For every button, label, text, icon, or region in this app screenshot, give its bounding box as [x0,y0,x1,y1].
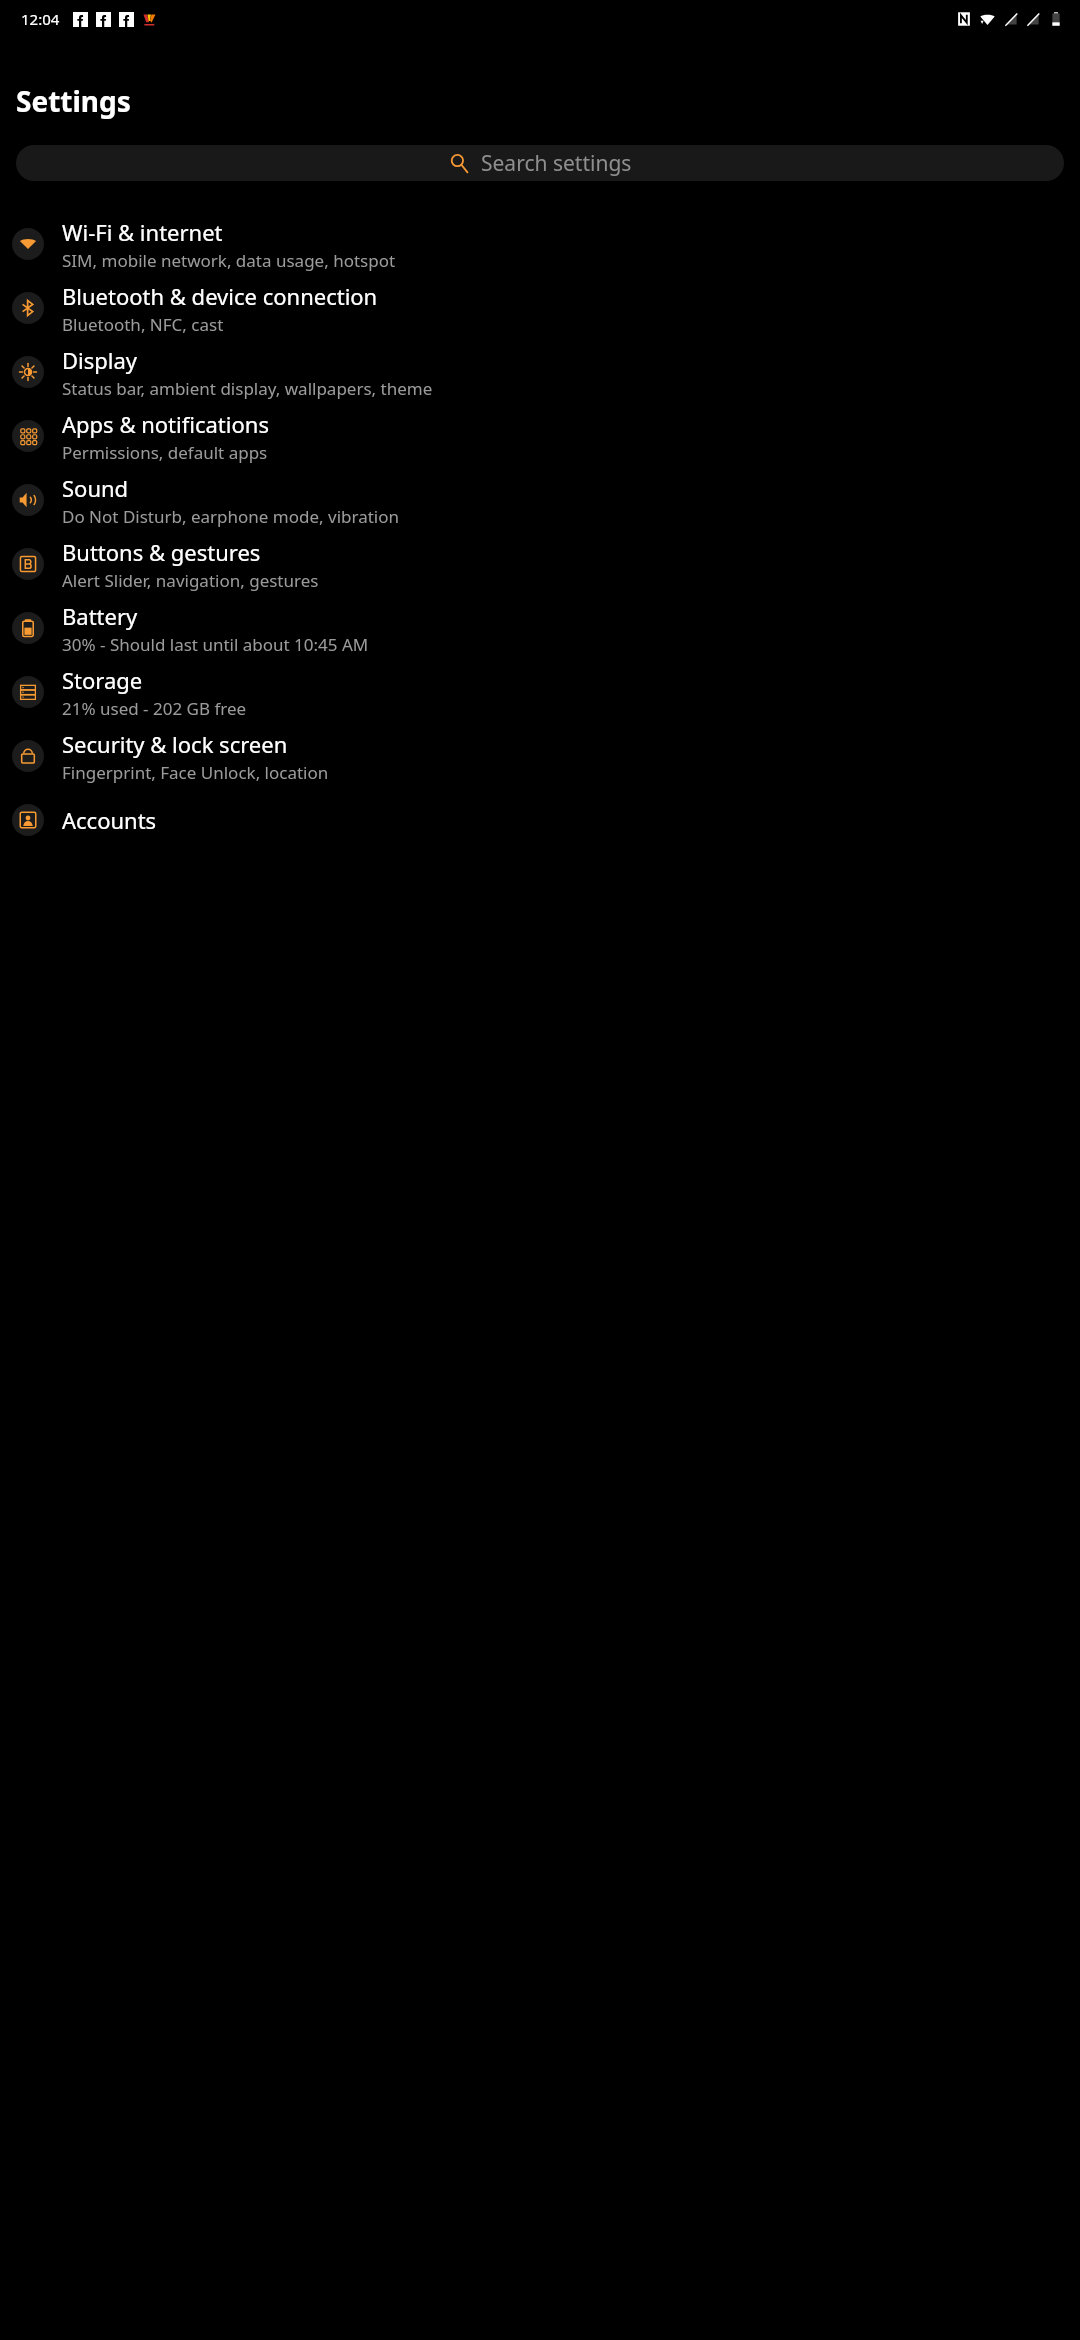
staticText: SIM, mobile network, data usage, hotspot [62,249,396,272]
button[interactable]: Security & lock screen [0,724,1080,788]
button[interactable]: Bluetooth & device connection [0,276,1080,340]
staticText: Alert Slider, navigation, gestures [62,569,319,592]
button[interactable]: Battery [0,596,1080,660]
button[interactable]: Wi-Fi & internet [0,212,1080,276]
staticText: Apps & notifications [62,409,269,439]
button[interactable]: Display [0,340,1080,404]
staticText: Permissions, default apps [62,441,268,464]
staticText: Bluetooth & device connection [62,281,378,311]
staticText: Settings [16,82,131,120]
staticText: Fingerprint, Face Unlock, location [62,761,329,784]
staticText: Sound [62,473,129,503]
staticText: 30% - Should last until about 10:45 AM [62,633,369,656]
button[interactable]: Search settings [16,145,1064,181]
staticText: Storage [62,665,143,695]
staticText: Security & lock screen [62,729,288,759]
staticText: 21% used - 202 GB free [62,697,247,720]
staticText: Battery [62,601,138,631]
staticText: Search settings [481,149,632,178]
button[interactable]: Storage [0,660,1080,724]
staticText: Wi-Fi & internet [62,217,223,247]
button[interactable]: Apps & notifications [0,404,1080,468]
staticText: Bluetooth, NFC, cast [62,313,224,336]
button[interactable]: Sound [0,468,1080,532]
staticText: Status bar, ambient display, wallpapers,… [62,377,433,400]
staticText: Accounts [62,805,157,835]
staticText: Buttons & gestures [62,537,261,567]
staticText: 12:04 [21,9,60,29]
staticText: Do Not Disturb, earphone mode, vibration [62,505,400,528]
button[interactable]: Buttons & gestures [0,532,1080,596]
staticText: Display [62,345,138,375]
button[interactable]: Accounts [0,788,1080,852]
